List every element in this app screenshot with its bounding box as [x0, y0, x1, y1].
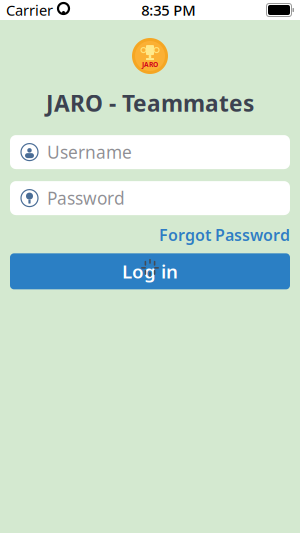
staticText: JARO - Teammates	[46, 88, 254, 118]
staticText: Forgot Password	[159, 224, 290, 245]
staticText: Log in	[122, 259, 178, 284]
staticText: 8:35 PM	[141, 0, 195, 20]
staticText: Carrier	[6, 0, 53, 20]
staticText: Username	[47, 141, 132, 164]
staticText: Password	[47, 187, 125, 210]
button[interactable]: Password	[10, 181, 290, 215]
button[interactable]: Username	[10, 135, 290, 169]
button[interactable]: Forgot Password	[159, 224, 290, 245]
staticText: JARO	[142, 60, 158, 69]
button[interactable]: Log in	[10, 253, 290, 289]
